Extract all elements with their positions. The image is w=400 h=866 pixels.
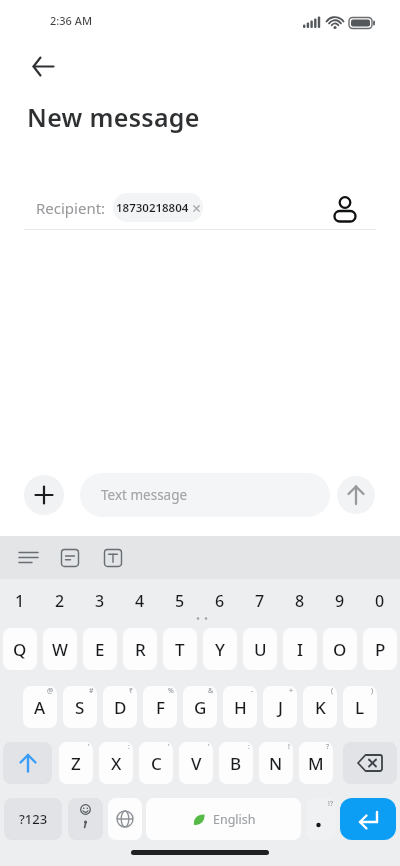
button[interactable]: Text message xyxy=(80,473,330,517)
button[interactable]: Q xyxy=(3,628,37,670)
button[interactable]: H xyxy=(223,686,257,728)
button[interactable]: P xyxy=(363,628,397,670)
button[interactable]: D xyxy=(103,686,137,728)
button[interactable]: S xyxy=(63,686,97,728)
button[interactable]: 1 xyxy=(0,588,40,614)
staticText: ? xyxy=(326,742,330,752)
staticText: A xyxy=(34,696,46,719)
button[interactable] xyxy=(340,798,396,840)
button[interactable]: English xyxy=(146,798,301,840)
staticText: + xyxy=(289,686,294,696)
staticText: ' xyxy=(88,742,90,752)
staticText: Z xyxy=(71,752,81,775)
staticText: 5 xyxy=(175,590,185,612)
staticText: ) xyxy=(371,686,374,696)
button[interactable] xyxy=(343,742,397,784)
button[interactable]: 5 xyxy=(160,588,200,614)
button[interactable] xyxy=(14,546,42,570)
staticText: X xyxy=(111,752,122,775)
button[interactable]: K xyxy=(303,686,337,728)
staticText: F xyxy=(156,696,165,719)
staticText: ₹ xyxy=(129,686,134,696)
staticText: : xyxy=(248,742,250,752)
staticText: Recipient: xyxy=(36,198,106,218)
staticText: 7 xyxy=(255,590,265,612)
staticText: N xyxy=(269,752,283,775)
staticText: G xyxy=(194,696,207,719)
button[interactable] xyxy=(108,798,142,840)
button[interactable] xyxy=(24,475,64,515)
button[interactable]: O xyxy=(323,628,357,670)
staticText: K xyxy=(315,696,326,719)
button[interactable] xyxy=(99,546,127,570)
button[interactable]: 3 xyxy=(80,588,120,614)
staticText: : xyxy=(128,742,130,752)
staticText: B xyxy=(230,752,242,775)
button[interactable]: 6 xyxy=(200,588,240,614)
button[interactable]: F xyxy=(143,686,177,728)
button[interactable]: 7 xyxy=(240,588,280,614)
button[interactable]: G xyxy=(183,686,217,728)
button[interactable]: U xyxy=(243,628,277,670)
staticText: H xyxy=(234,696,247,719)
button[interactable]: Z xyxy=(59,742,93,784)
staticText: L xyxy=(355,696,365,719)
button[interactable] xyxy=(337,476,375,514)
staticText: O xyxy=(333,638,347,661)
button[interactable] xyxy=(3,742,52,784)
button[interactable] xyxy=(24,52,64,82)
staticText: New message xyxy=(27,100,200,134)
staticText: 8 xyxy=(295,590,305,612)
button[interactable]: A xyxy=(23,686,57,728)
button[interactable]: 18730218804 xyxy=(113,193,203,222)
button[interactable] xyxy=(56,546,84,570)
staticText: 1 xyxy=(15,590,25,612)
staticText: W xyxy=(52,638,68,661)
button[interactable]: 0 xyxy=(360,588,400,614)
staticText: ?123 xyxy=(19,810,48,828)
staticText: !? xyxy=(328,799,333,809)
staticText: D xyxy=(114,696,127,719)
button[interactable] xyxy=(68,798,103,840)
staticText: V xyxy=(191,752,202,775)
staticText: Text message xyxy=(101,486,188,504)
button[interactable]: !? xyxy=(306,798,336,840)
button[interactable]: E xyxy=(83,628,117,670)
button[interactable]: 9 xyxy=(320,588,360,614)
staticText: 2 xyxy=(55,590,65,612)
button[interactable]: I xyxy=(283,628,317,670)
staticText: ! xyxy=(288,742,290,752)
staticText: ' xyxy=(168,742,170,752)
button[interactable]: 4 xyxy=(120,588,160,614)
staticText: 9 xyxy=(335,590,345,612)
button[interactable]: V xyxy=(179,742,213,784)
button[interactable]: J xyxy=(263,686,297,728)
button[interactable]: Y xyxy=(203,628,237,670)
staticText: - xyxy=(251,686,254,696)
button[interactable]: B xyxy=(219,742,253,784)
button[interactable]: W xyxy=(43,628,77,670)
staticText: @ xyxy=(47,686,54,696)
button[interactable]: 8 xyxy=(280,588,320,614)
staticText: R xyxy=(135,638,146,661)
staticText: % xyxy=(168,686,174,696)
button[interactable]: M xyxy=(299,742,333,784)
button[interactable]: C xyxy=(139,742,173,784)
staticText: 18730218804 xyxy=(116,200,189,216)
button[interactable]: X xyxy=(99,742,133,784)
button[interactable]: N xyxy=(259,742,293,784)
button[interactable]: 2 xyxy=(40,588,80,614)
staticText: J xyxy=(278,696,283,719)
button[interactable]: ?123 xyxy=(4,798,62,840)
button[interactable]: R xyxy=(123,628,157,670)
staticText: # xyxy=(89,686,94,696)
button[interactable]: L xyxy=(343,686,377,728)
staticText: I xyxy=(297,638,304,661)
button[interactable]: T xyxy=(163,628,197,670)
staticText: 4 xyxy=(135,590,145,612)
button[interactable] xyxy=(330,192,360,224)
staticText: English xyxy=(213,811,256,828)
staticText: C xyxy=(151,752,162,775)
staticText: & xyxy=(208,686,214,696)
staticText: 6 xyxy=(215,590,225,612)
